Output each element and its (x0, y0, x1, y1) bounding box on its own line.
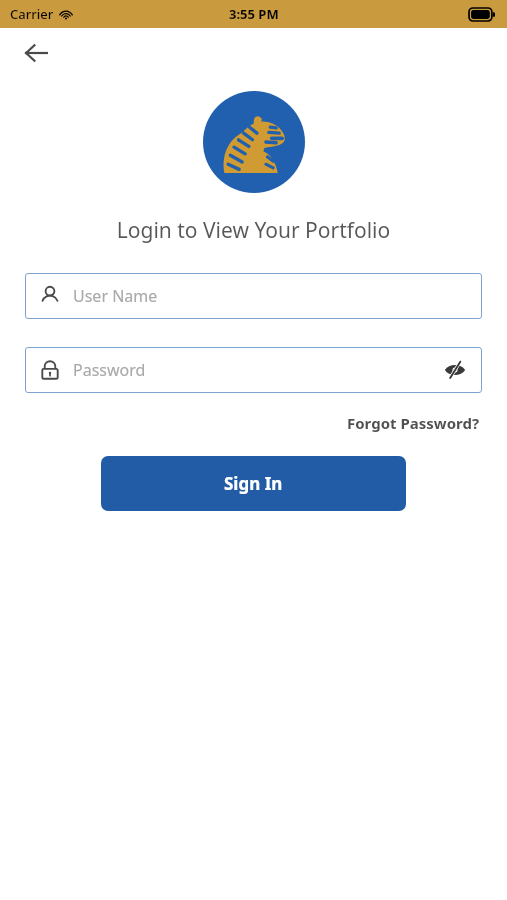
staticText: 3:55 PM (229, 5, 279, 23)
button[interactable]: Forgot Password? (345, 407, 482, 439)
staticText: User Name (73, 285, 468, 307)
button[interactable]: Password (25, 347, 482, 393)
staticText: Carrier (10, 5, 54, 23)
staticText: Forgot Password? (347, 413, 480, 433)
button[interactable]: Show password (442, 357, 468, 383)
staticText: Password (73, 359, 442, 381)
staticText: Login to View Your Portfolio (0, 216, 507, 245)
staticText: Sign In (224, 472, 283, 495)
button[interactable]: User Name (25, 273, 482, 319)
button[interactable]: Sign In (101, 456, 406, 511)
button[interactable]: Back (16, 33, 56, 73)
